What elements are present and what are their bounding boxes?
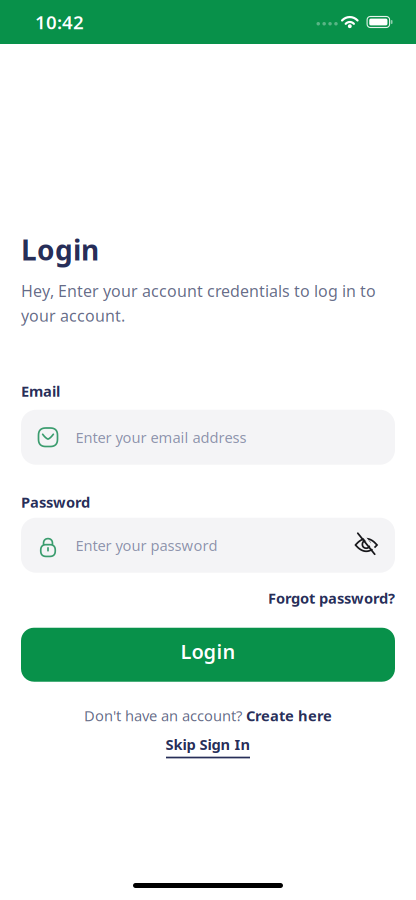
staticText: Skip Sign In: [165, 735, 250, 754]
staticText: 10:42: [35, 10, 84, 34]
staticText: Email: [21, 381, 60, 401]
button[interactable]: Enter your password: [21, 518, 395, 573]
staticText: Create here: [246, 706, 332, 725]
button[interactable]: Forgot password?: [268, 588, 395, 608]
staticText: Login: [21, 231, 99, 268]
staticText: Don't have an account?: [84, 706, 246, 725]
staticText: Enter your email address: [75, 427, 246, 447]
button[interactable]: Login: [21, 628, 395, 682]
staticText: Hey, Enter your account credentials to l…: [21, 280, 376, 326]
button[interactable]: Enter your email address: [21, 410, 395, 465]
staticText: Password: [21, 492, 90, 512]
staticText: Login: [180, 638, 235, 664]
button[interactable]: Create here: [246, 706, 332, 725]
button[interactable]: Skip Sign In: [165, 735, 250, 758]
staticText: Enter your password: [75, 535, 217, 555]
button[interactable]: Show password: [354, 519, 395, 571]
staticText: Forgot password?: [268, 588, 395, 608]
